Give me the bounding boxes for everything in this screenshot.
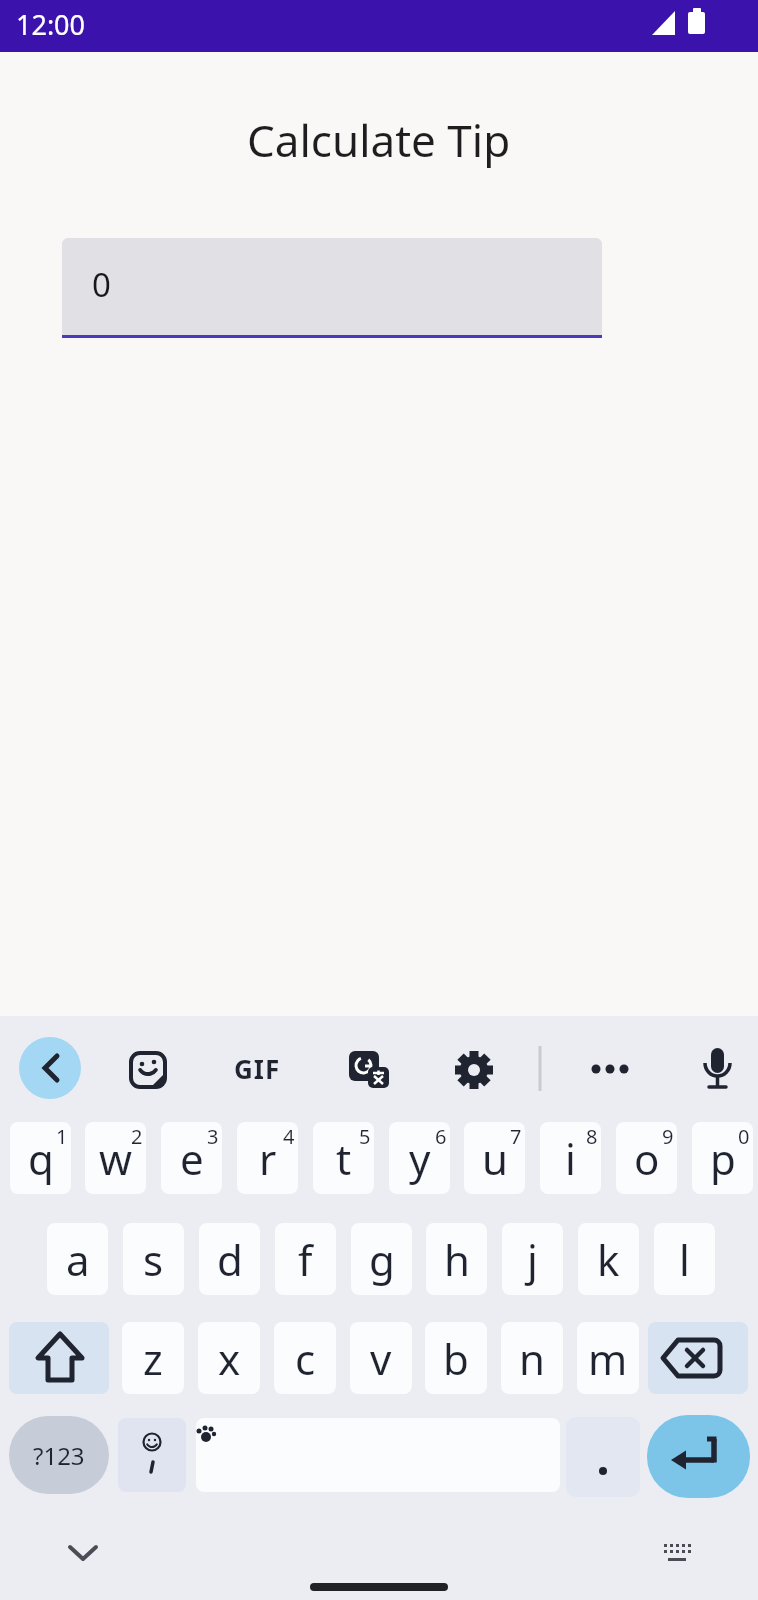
button[interactable] xyxy=(566,1417,640,1497)
button[interactable]: x xyxy=(198,1322,260,1394)
button[interactable]: e xyxy=(161,1122,222,1194)
staticText: r xyxy=(259,1130,277,1187)
staticText: c xyxy=(295,1330,316,1387)
button[interactable]: v xyxy=(350,1322,412,1394)
button[interactable]: r xyxy=(237,1122,298,1194)
staticText: p xyxy=(710,1130,736,1187)
staticText: x xyxy=(218,1330,241,1387)
staticText: q xyxy=(28,1130,54,1187)
button[interactable]: m xyxy=(577,1322,639,1394)
staticText: u xyxy=(482,1130,508,1187)
staticText: 0 xyxy=(738,1123,750,1150)
button[interactable] xyxy=(9,1322,109,1394)
button[interactable] xyxy=(126,1046,170,1090)
staticText: GIF xyxy=(234,1051,281,1086)
button[interactable]: s xyxy=(123,1223,184,1295)
button[interactable]: w xyxy=(85,1122,146,1194)
staticText: f xyxy=(298,1231,313,1288)
staticText: 3 xyxy=(207,1123,219,1150)
button[interactable]: c xyxy=(274,1322,336,1394)
button[interactable] xyxy=(346,1046,390,1090)
staticText: k xyxy=(597,1231,620,1288)
staticText: Calculate Tip xyxy=(247,110,511,170)
button[interactable]: i xyxy=(540,1122,601,1194)
button[interactable]: g xyxy=(351,1223,412,1295)
staticText: j xyxy=(527,1231,538,1288)
staticText: s xyxy=(143,1231,164,1288)
staticText: h xyxy=(444,1231,470,1288)
staticText: g xyxy=(369,1231,395,1288)
button[interactable]: o xyxy=(616,1122,677,1194)
button[interactable]: z xyxy=(122,1322,184,1394)
button[interactable]: 0 xyxy=(62,238,602,338)
staticText: y xyxy=(409,1130,431,1187)
staticText: ?123 xyxy=(33,1439,85,1472)
button[interactable]: u xyxy=(464,1122,525,1194)
staticText: m xyxy=(588,1330,628,1387)
staticText: 9 xyxy=(662,1123,674,1150)
button[interactable]: n xyxy=(501,1322,563,1394)
staticText: n xyxy=(519,1330,545,1387)
button[interactable] xyxy=(19,1037,81,1099)
staticText: e xyxy=(180,1130,204,1187)
button[interactable]: h xyxy=(426,1223,487,1295)
staticText: 5 xyxy=(359,1123,371,1150)
button[interactable]: l xyxy=(654,1223,715,1295)
staticText: o xyxy=(634,1130,660,1187)
button[interactable] xyxy=(648,1322,748,1394)
button[interactable]: t xyxy=(313,1122,374,1194)
button[interactable]: k xyxy=(578,1223,639,1295)
staticText: t xyxy=(336,1130,352,1187)
staticText: 6 xyxy=(435,1123,447,1150)
staticText: w xyxy=(99,1130,133,1187)
button[interactable] xyxy=(196,1418,560,1492)
button[interactable] xyxy=(118,1418,186,1492)
button[interactable] xyxy=(587,1046,631,1090)
button[interactable]: d xyxy=(199,1223,260,1295)
staticText: i xyxy=(565,1130,576,1187)
button[interactable]: ?123 xyxy=(9,1416,109,1494)
button[interactable] xyxy=(696,1046,740,1090)
staticText: b xyxy=(443,1330,469,1387)
button[interactable]: q xyxy=(10,1122,71,1194)
button[interactable]: f xyxy=(275,1223,336,1295)
button[interactable]: GIF xyxy=(225,1046,289,1090)
staticText: d xyxy=(217,1231,243,1288)
button[interactable]: p xyxy=(692,1122,753,1194)
staticText: 1 xyxy=(56,1123,68,1150)
staticText: v xyxy=(370,1330,392,1387)
button[interactable]: y xyxy=(389,1122,450,1194)
staticText: z xyxy=(143,1330,163,1387)
staticText: 2 xyxy=(131,1123,143,1150)
staticText: 8 xyxy=(586,1123,598,1150)
staticText: 4 xyxy=(283,1123,295,1150)
staticText: 12:00 xyxy=(16,6,86,43)
staticText: 7 xyxy=(510,1123,522,1150)
button[interactable]: j xyxy=(502,1223,563,1295)
button[interactable]: a xyxy=(47,1223,108,1295)
button[interactable] xyxy=(647,1415,750,1498)
staticText: l xyxy=(679,1231,690,1288)
staticText: 0 xyxy=(92,262,111,307)
staticText: a xyxy=(66,1231,90,1288)
button[interactable] xyxy=(452,1046,496,1090)
button[interactable]: b xyxy=(425,1322,487,1394)
